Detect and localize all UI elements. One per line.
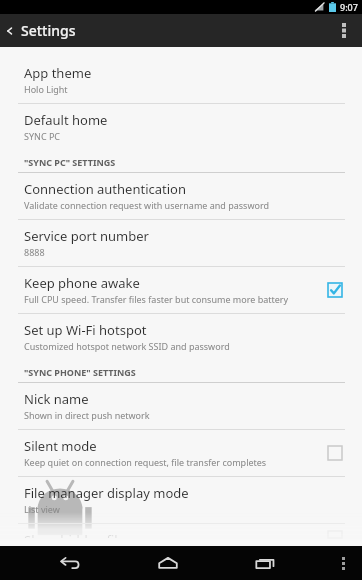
- staticText: Keep quiet on connection request, file t…: [24, 456, 267, 468]
- staticText: Keep phone awake: [24, 274, 140, 292]
- button[interactable]: App theme: [0, 57, 362, 103]
- staticText: File manager display mode: [24, 484, 189, 502]
- button[interactable]: Back: [48, 546, 92, 580]
- staticText: Full CPU speed. Transfer files faster bu…: [24, 293, 289, 305]
- button[interactable]: Connection authentication: [0, 173, 362, 219]
- button[interactable]: Recent apps: [244, 546, 288, 580]
- staticText: "SYNC PHONE" SETTINGS: [24, 366, 136, 378]
- staticText: Customized hotspot network SSID and pass…: [24, 340, 230, 352]
- staticText: Silent mode: [24, 437, 97, 455]
- staticText: Connection authentication: [24, 180, 186, 198]
- button[interactable]: Default home: [0, 104, 362, 150]
- staticText: Set up Wi-Fi hotspot: [24, 321, 147, 339]
- staticText: 8888: [24, 246, 45, 258]
- button[interactable]: Service port number: [0, 220, 362, 266]
- staticText: Settings: [21, 21, 76, 40]
- button[interactable]: Home: [146, 546, 190, 580]
- button[interactable]: File manager display mode: [0, 477, 362, 523]
- button[interactable]: Back: [0, 14, 86, 47]
- button[interactable]: Silent mode: [0, 430, 362, 476]
- staticText: Default home: [24, 111, 108, 129]
- button[interactable]: Show hidden files: [0, 524, 362, 546]
- staticText: Service port number: [24, 227, 149, 245]
- button[interactable]: Toggle: [322, 277, 348, 303]
- staticText: Nick name: [24, 390, 89, 408]
- staticText: Shown in direct push network: [24, 409, 150, 421]
- staticText: "SYNC PC" SETTINGS: [24, 156, 116, 168]
- staticText: 9:07: [340, 1, 358, 13]
- other: Back: [4, 25, 16, 37]
- button[interactable]: Keep phone awake: [0, 267, 362, 313]
- staticText: List view: [24, 503, 60, 515]
- staticText: App theme: [24, 64, 92, 82]
- staticText: Holo Light: [24, 83, 68, 95]
- button[interactable]: Menu: [328, 546, 358, 580]
- button[interactable]: Nick name: [0, 383, 362, 429]
- staticText: Validate connection request with usernam…: [24, 199, 269, 211]
- staticText: SYNC PC: [24, 130, 61, 142]
- button[interactable]: Toggle: [322, 440, 348, 466]
- button[interactable]: Set up Wi-Fi hotspot: [0, 314, 362, 360]
- staticText: Show hidden files: [24, 531, 132, 538]
- button[interactable]: More options: [326, 14, 362, 47]
